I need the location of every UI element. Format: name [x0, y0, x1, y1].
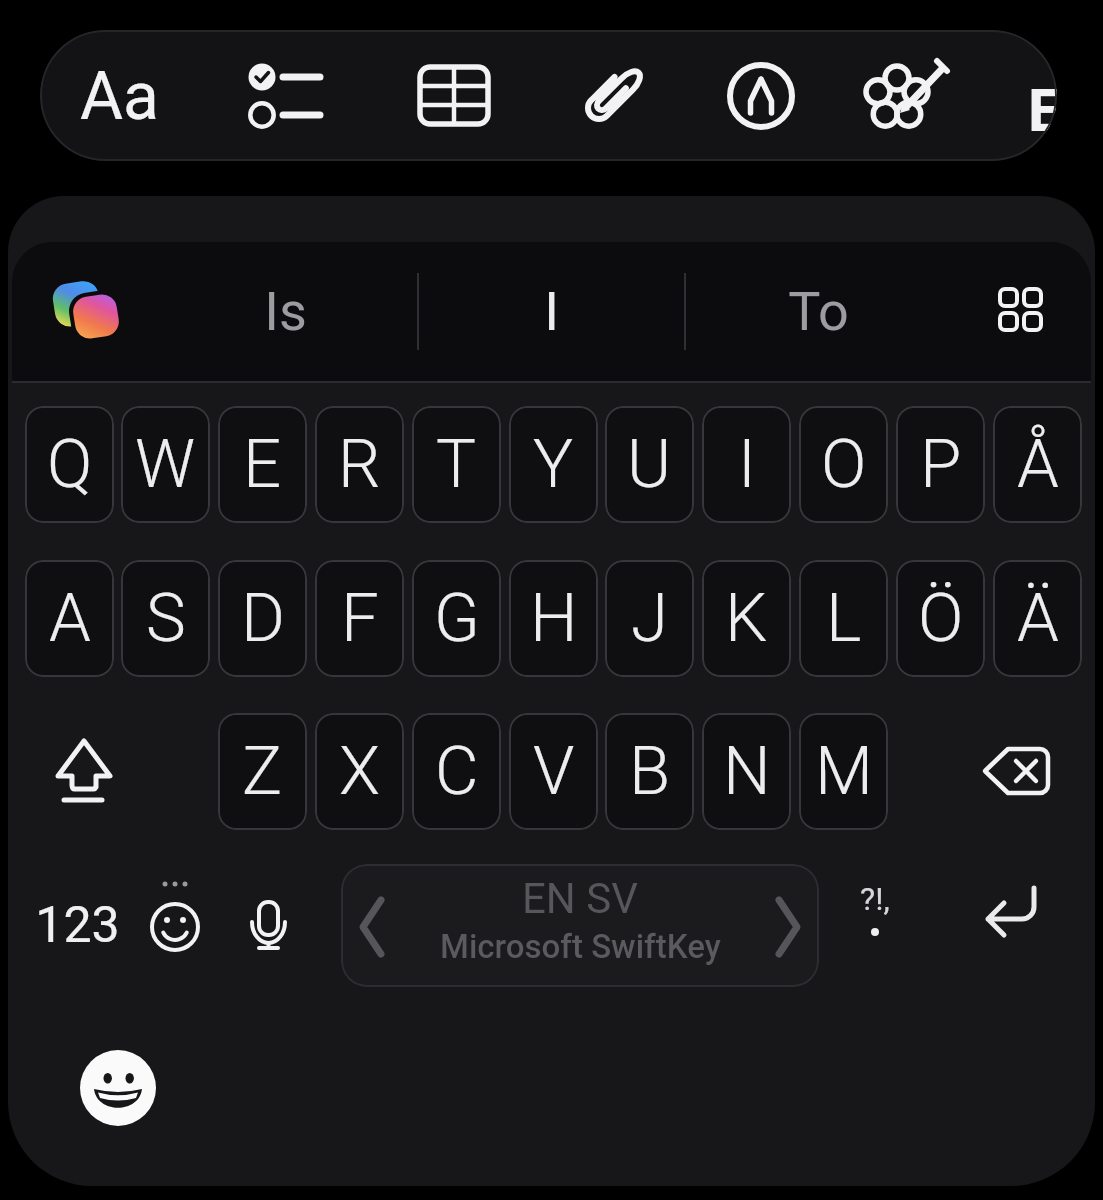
staticText: Ö	[918, 579, 964, 658]
button[interactable]	[998, 287, 1046, 335]
button[interactable]: To	[748, 275, 888, 347]
staticText: Microsoft SwiftKey	[440, 927, 721, 966]
button[interactable]: M	[799, 713, 888, 830]
staticText: I	[544, 280, 559, 343]
staticText: L	[826, 579, 862, 658]
staticText: R	[338, 425, 381, 504]
button[interactable]	[965, 713, 1075, 830]
staticText: X	[339, 732, 381, 811]
button[interactable]: Z	[218, 713, 307, 830]
button[interactable]: C	[412, 713, 501, 830]
button[interactable]: K	[702, 560, 791, 677]
button[interactable]	[242, 50, 334, 142]
staticText: Z	[242, 732, 283, 811]
button[interactable]: W	[121, 406, 210, 523]
button[interactable]: J	[605, 560, 694, 677]
button[interactable]: A	[25, 560, 114, 677]
button[interactable]: Ö	[896, 560, 985, 677]
staticText: I	[738, 425, 756, 504]
button[interactable]: I	[702, 406, 791, 523]
button[interactable]: Ä	[993, 560, 1082, 677]
staticText: M	[815, 732, 873, 811]
staticText: Ä	[1017, 579, 1059, 658]
staticText: D	[241, 579, 285, 658]
staticText: Y	[533, 425, 574, 504]
button[interactable]: 123	[30, 890, 125, 960]
button[interactable]	[55, 280, 117, 342]
staticText: E	[243, 425, 282, 504]
staticText: J	[631, 579, 668, 658]
button[interactable]: ?!,	[838, 875, 912, 965]
staticText: Is	[264, 280, 307, 343]
staticText: E	[1028, 75, 1057, 145]
staticText: Q	[47, 425, 93, 504]
button[interactable]: O	[799, 406, 888, 523]
button[interactable]: Aa	[74, 56, 164, 136]
button[interactable]: P	[896, 406, 985, 523]
staticText: A	[49, 579, 91, 658]
staticText: C	[435, 732, 479, 811]
staticText: O	[821, 425, 867, 504]
button[interactable]: X	[315, 713, 404, 830]
staticText: ?!,	[860, 880, 890, 918]
staticText: G	[434, 579, 480, 658]
button[interactable]: D	[218, 560, 307, 677]
staticText: To	[788, 280, 849, 343]
staticText: W	[135, 425, 196, 504]
button[interactable]	[408, 50, 500, 142]
button[interactable]	[715, 50, 807, 142]
button[interactable]	[35, 713, 135, 830]
button[interactable]: EN SV	[341, 864, 819, 987]
button[interactable]: L	[799, 560, 888, 677]
button[interactable]	[565, 50, 657, 142]
staticText: H	[530, 579, 578, 658]
button[interactable]	[970, 875, 1050, 955]
button[interactable]	[78, 1048, 158, 1128]
button[interactable]: T	[412, 406, 501, 523]
staticText: B	[629, 732, 671, 811]
button[interactable]: E	[1023, 72, 1057, 148]
button[interactable]: Q	[25, 406, 114, 523]
button[interactable]	[855, 45, 955, 145]
button[interactable]: I	[481, 275, 621, 347]
button[interactable]: V	[509, 713, 598, 830]
button[interactable]: N	[702, 713, 791, 830]
staticText: P	[920, 425, 962, 504]
button[interactable]: E	[218, 406, 307, 523]
staticText: S	[146, 579, 186, 658]
staticText: N	[723, 732, 771, 811]
button[interactable]	[240, 890, 298, 960]
staticText: 123	[35, 896, 120, 955]
button[interactable]: Is	[215, 275, 355, 347]
button[interactable]: U	[605, 406, 694, 523]
button[interactable]: S	[121, 560, 210, 677]
button[interactable]: R	[315, 406, 404, 523]
staticText: EN SV	[522, 874, 638, 918]
staticText: F	[341, 579, 379, 658]
button[interactable]	[143, 870, 207, 960]
staticText: T	[436, 425, 477, 504]
staticText: K	[725, 579, 768, 658]
button[interactable]: Y	[509, 406, 598, 523]
button[interactable]: G	[412, 560, 501, 677]
staticText: V	[533, 732, 575, 811]
button[interactable]: H	[509, 560, 598, 677]
staticText: U	[627, 425, 672, 504]
button[interactable]: Å	[993, 406, 1082, 523]
button[interactable]: B	[605, 713, 694, 830]
button[interactable]: F	[315, 560, 404, 677]
staticText: Å	[1017, 425, 1059, 504]
staticText: Aa	[80, 58, 159, 135]
